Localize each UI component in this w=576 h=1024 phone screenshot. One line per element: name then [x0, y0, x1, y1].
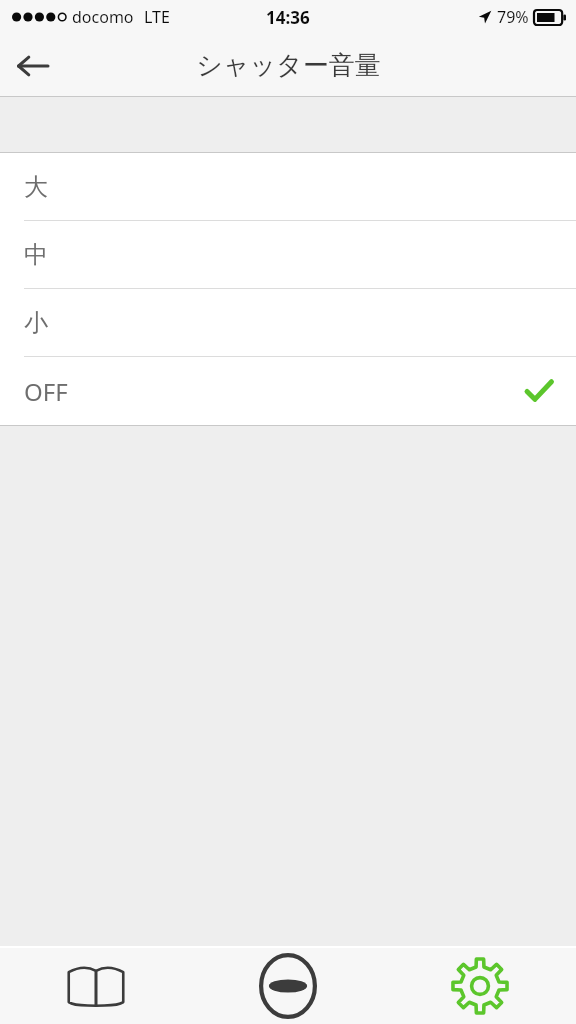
staticText: 大	[24, 172, 48, 202]
button[interactable]: Guide	[0, 948, 192, 1024]
button[interactable]: Back	[10, 44, 54, 88]
button[interactable]: OFF	[0, 357, 576, 425]
staticText: 14:36	[266, 6, 310, 29]
staticText: docomo	[72, 6, 134, 28]
button[interactable]: 小	[0, 289, 576, 357]
button[interactable]: 大	[0, 153, 576, 221]
button[interactable]: Camera	[192, 948, 384, 1024]
staticText: 小	[24, 308, 48, 338]
staticText: 中	[24, 240, 48, 270]
staticText: シャッター音量	[196, 49, 381, 82]
staticText: 79%	[497, 6, 529, 28]
button[interactable]: 中	[0, 221, 576, 289]
staticText: OFF	[24, 375, 68, 408]
button[interactable]: Settings	[384, 948, 576, 1024]
staticText: LTE	[144, 6, 170, 28]
